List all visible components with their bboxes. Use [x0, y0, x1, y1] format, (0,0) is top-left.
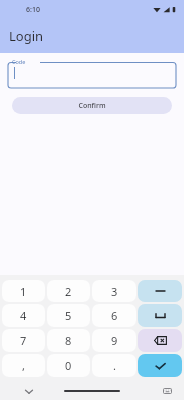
button[interactable]: Dash: [138, 280, 182, 302]
staticText: Confirm: [78, 101, 106, 111]
button[interactable]: Switch keyboard: [160, 384, 174, 398]
staticText: 6:10: [26, 5, 40, 15]
button[interactable]: Backspace: [138, 329, 182, 352]
button[interactable]: 6: [92, 304, 136, 327]
staticText: 5: [65, 308, 72, 323]
staticText: 8: [65, 333, 72, 348]
staticText: ,: [22, 358, 25, 373]
staticText: 7: [20, 333, 27, 348]
button[interactable]: Confirm: [12, 97, 172, 114]
staticText: Code: [12, 58, 26, 65]
staticText: 6: [111, 308, 118, 323]
staticText: 1: [20, 284, 27, 299]
staticText: .: [113, 358, 116, 373]
button[interactable]: 5: [47, 304, 90, 327]
button[interactable]: Enter: [138, 354, 182, 377]
button[interactable]: 8: [47, 329, 90, 352]
button[interactable]: Space: [138, 304, 182, 327]
button[interactable]: 0: [47, 354, 90, 377]
button[interactable]: Hide keyboard: [22, 384, 36, 398]
button[interactable]: 7: [2, 329, 45, 352]
staticText: 9: [111, 333, 118, 348]
button[interactable]: 3: [92, 280, 136, 302]
staticText: 0: [65, 358, 72, 373]
staticText: 3: [111, 284, 118, 299]
button[interactable]: .: [92, 354, 136, 377]
staticText: 4: [20, 308, 27, 323]
button[interactable]: 9: [92, 329, 136, 352]
button[interactable]: 4: [2, 304, 45, 327]
button[interactable]: 1: [2, 280, 45, 302]
button[interactable]: Code: [8, 58, 176, 88]
button[interactable]: 2: [47, 280, 90, 302]
button[interactable]: ,: [2, 354, 45, 377]
staticText: Login: [9, 27, 44, 45]
staticText: 2: [65, 284, 72, 299]
